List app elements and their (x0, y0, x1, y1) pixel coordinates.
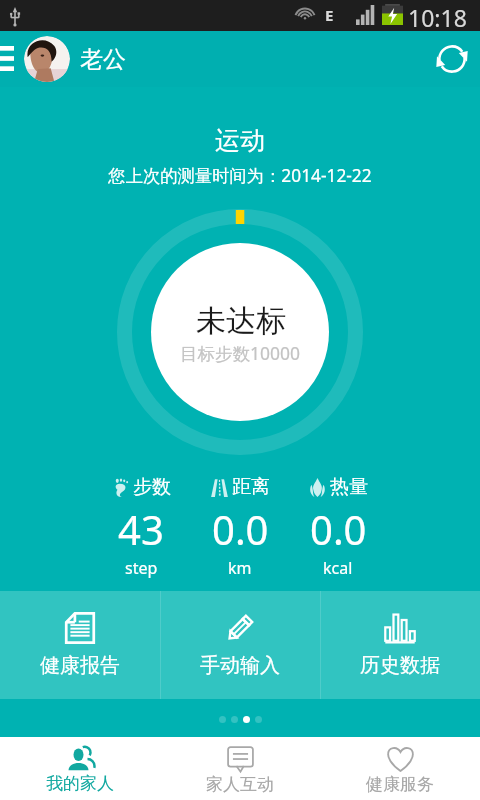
staticText: 10:18 (408, 2, 467, 33)
staticText: 0.0 (310, 502, 367, 556)
staticText: 家人互动 (206, 774, 274, 795)
staticText: 热量 (330, 475, 368, 499)
staticText: 0.0 (212, 502, 269, 556)
staticText: 目标步数10000 (180, 341, 301, 365)
button[interactable]: 健康报告 (0, 591, 160, 699)
staticText: 未达标 (196, 302, 286, 340)
staticText: 健康报告 (40, 653, 120, 678)
staticText: km (228, 557, 252, 579)
button[interactable]: Refresh (424, 31, 480, 87)
button[interactable]: 手动输入 (160, 591, 320, 699)
button[interactable]: Menu (0, 31, 22, 87)
staticText: 我的家人 (46, 773, 114, 794)
staticText: step (125, 557, 158, 579)
staticText: 43 (118, 502, 164, 556)
staticText: 距离 (232, 475, 270, 499)
staticText: kcal (323, 557, 353, 579)
staticText: 历史数据 (360, 653, 440, 678)
staticText: 老公 (80, 45, 126, 74)
staticText: 手动输入 (200, 653, 280, 678)
staticText: 健康服务 (366, 774, 434, 795)
staticText: 运动 (0, 125, 480, 156)
staticText: 步数 (133, 475, 171, 499)
button[interactable]: 家人互动 (160, 737, 320, 800)
button[interactable]: 我的家人 (0, 737, 160, 800)
staticText: 您上次的测量时间为：2014-12-22 (0, 164, 480, 188)
button[interactable]: 健康服务 (320, 737, 480, 800)
staticText: E (325, 5, 334, 25)
button[interactable]: 历史数据 (320, 591, 480, 699)
